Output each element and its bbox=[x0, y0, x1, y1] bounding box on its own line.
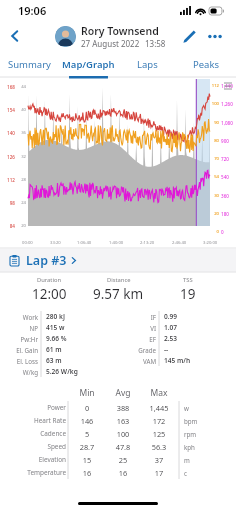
staticText: 98 bbox=[2, 200, 15, 206]
staticText: IF bbox=[118, 313, 156, 321]
staticText: 24 bbox=[17, 200, 26, 206]
staticText: Min bbox=[71, 387, 103, 399]
staticText: 0 bbox=[221, 229, 235, 235]
staticText: bpm bbox=[184, 417, 198, 425]
staticText: 5 bbox=[71, 429, 103, 439]
staticText: 70 bbox=[209, 156, 219, 162]
staticText: Avg bbox=[107, 387, 139, 399]
staticText: 145 m/h bbox=[164, 356, 191, 365]
staticText: 900 bbox=[221, 138, 235, 144]
staticText: 40 bbox=[17, 107, 26, 113]
button[interactable]: Lap #3 bbox=[0, 249, 236, 272]
staticText: Elevation bbox=[10, 455, 66, 464]
staticText: 1,260 bbox=[221, 101, 235, 107]
staticText: VI bbox=[118, 324, 156, 332]
staticText: 12:00 bbox=[32, 285, 67, 303]
staticText: 0 bbox=[209, 229, 219, 235]
staticText: 44 bbox=[17, 84, 26, 90]
staticText: kph bbox=[184, 443, 195, 451]
staticText: 80 bbox=[209, 138, 219, 144]
staticText: 1.07 bbox=[164, 323, 178, 332]
staticText: Laps bbox=[137, 58, 158, 71]
staticText: 154 bbox=[2, 107, 15, 113]
button[interactable]: Back bbox=[0, 21, 30, 51]
staticText: 17 bbox=[143, 468, 175, 478]
staticText: 126 bbox=[2, 154, 15, 160]
button[interactable]: More options bbox=[202, 23, 228, 49]
staticText: 2:13:20 bbox=[140, 240, 155, 246]
staticText: 63 m bbox=[46, 356, 62, 365]
staticText: w bbox=[184, 404, 189, 412]
button[interactable]: Peaks bbox=[177, 52, 236, 76]
staticText: 0.99 bbox=[164, 312, 178, 321]
staticText: 163 bbox=[107, 416, 139, 426]
staticText: Power bbox=[10, 403, 66, 412]
staticText: VAM bbox=[118, 357, 156, 365]
staticText: 16 bbox=[71, 468, 103, 478]
staticText: 19 bbox=[180, 285, 196, 303]
staticText: 27 August 2022 bbox=[81, 38, 140, 49]
staticText: 172 bbox=[143, 416, 175, 426]
staticText: Temperature bbox=[10, 468, 66, 477]
staticText: 280 kJ bbox=[46, 312, 65, 321]
staticText: 1:06:40 bbox=[77, 240, 92, 246]
staticText: 1,080 bbox=[221, 120, 235, 126]
staticText: 100 bbox=[107, 429, 139, 439]
button[interactable]: Edit bbox=[176, 23, 202, 49]
staticText: Cadence bbox=[10, 429, 66, 438]
staticText: 540 bbox=[221, 174, 235, 180]
staticText: 16 bbox=[107, 468, 139, 478]
staticText: 84 bbox=[2, 223, 15, 229]
staticText: 9.57 km bbox=[93, 285, 144, 303]
staticText: 54 bbox=[209, 174, 219, 180]
staticText: 100 bbox=[209, 101, 219, 107]
staticText: 3:20:00 bbox=[203, 240, 218, 246]
staticText: 47.8 bbox=[107, 442, 139, 452]
staticText: 1,445 bbox=[143, 403, 175, 413]
staticText: Lap #3 bbox=[26, 252, 67, 269]
staticText: c bbox=[184, 469, 187, 477]
staticText: 146 bbox=[71, 416, 103, 426]
staticText: 61 m bbox=[46, 345, 62, 354]
staticText: -- bbox=[164, 345, 169, 354]
staticText: EF bbox=[118, 335, 156, 343]
staticText: 2.53 bbox=[164, 334, 178, 343]
staticText: 180 bbox=[221, 211, 235, 217]
staticText: Summary bbox=[8, 58, 51, 71]
staticText: W/kg bbox=[0, 368, 38, 376]
button[interactable]: Laps bbox=[118, 52, 177, 76]
staticText: 20 bbox=[17, 223, 26, 229]
staticText: 112 bbox=[2, 177, 15, 183]
staticText: 28 bbox=[17, 177, 26, 183]
staticText: El. Gain bbox=[0, 346, 38, 354]
staticText: Map/Graph bbox=[62, 58, 115, 71]
button[interactable]: Summary bbox=[0, 52, 59, 76]
staticText: 5.26 W/kg bbox=[46, 367, 78, 376]
staticText: rpm bbox=[184, 430, 197, 438]
staticText: Work bbox=[0, 313, 38, 321]
staticText: 0 bbox=[71, 403, 103, 413]
staticText: 32 bbox=[17, 154, 26, 160]
staticText: Max bbox=[143, 387, 175, 399]
staticText: 140 bbox=[2, 130, 15, 136]
button[interactable]: Chart options bbox=[222, 80, 234, 92]
staticText: 28.7 bbox=[71, 442, 103, 452]
staticText: 1,440 bbox=[221, 83, 235, 89]
staticText: 00:00 bbox=[22, 240, 33, 246]
staticText: El. Loss bbox=[0, 357, 38, 365]
staticText: 360 bbox=[221, 193, 235, 199]
button[interactable]: Map/Graph bbox=[59, 52, 118, 76]
staticText: m bbox=[184, 456, 190, 464]
staticText: Duration bbox=[37, 276, 62, 284]
staticText: 112 bbox=[209, 83, 219, 89]
staticText: 56.3 bbox=[143, 442, 175, 452]
staticText: 33:20 bbox=[50, 240, 61, 246]
staticText: Peaks bbox=[193, 58, 220, 71]
staticText: 720 bbox=[221, 156, 235, 162]
staticText: 388 bbox=[107, 403, 139, 413]
staticText: Pw:Hr bbox=[0, 335, 38, 343]
staticText: 125 bbox=[143, 429, 175, 439]
staticText: 13:58 bbox=[145, 38, 166, 49]
staticText: NP bbox=[0, 324, 38, 332]
staticText: Rory Townsend bbox=[81, 24, 159, 38]
